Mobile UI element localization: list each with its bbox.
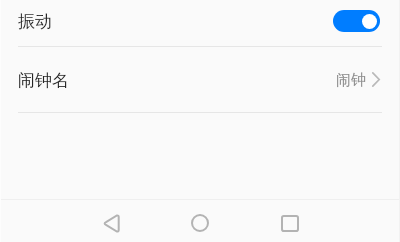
- button[interactable]: Recent apps: [260, 202, 320, 242]
- button[interactable]: Home: [170, 202, 230, 242]
- button[interactable]: 振动: [0, 0, 400, 46]
- staticText: 闹钟名: [18, 70, 69, 91]
- staticText: 振动: [18, 11, 52, 32]
- button[interactable]: 闹钟名: [0, 47, 400, 112]
- button[interactable]: Vibration toggle: [333, 10, 380, 32]
- staticText: 闹钟: [336, 71, 366, 90]
- button[interactable]: Back: [81, 202, 141, 242]
